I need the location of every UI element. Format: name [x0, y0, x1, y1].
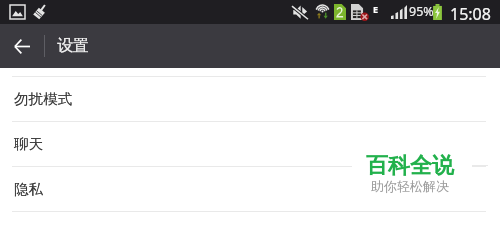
staticText: E — [373, 3, 379, 15]
staticText: 95% — [409, 3, 434, 20]
button[interactable]: 聊天 — [0, 122, 500, 166]
staticText: 15:08 — [450, 3, 491, 25]
button[interactable]: 隐私 — [0, 167, 500, 211]
staticText: 勿扰模式 — [14, 90, 72, 108]
staticText: 勿扰模式 — [14, 90, 72, 108]
staticText: 聊天 — [14, 135, 43, 153]
staticText: 助你轻松解决 — [371, 178, 449, 194]
staticText: 隐私 — [14, 180, 43, 198]
staticText: 百科全说 — [366, 152, 454, 180]
staticText: 设置 — [57, 36, 89, 56]
button[interactable]: Back — [0, 24, 44, 68]
button[interactable]: 勿扰模式 — [0, 77, 500, 121]
staticText: 隐私 — [14, 180, 43, 198]
staticText: 聊天 — [14, 135, 43, 153]
